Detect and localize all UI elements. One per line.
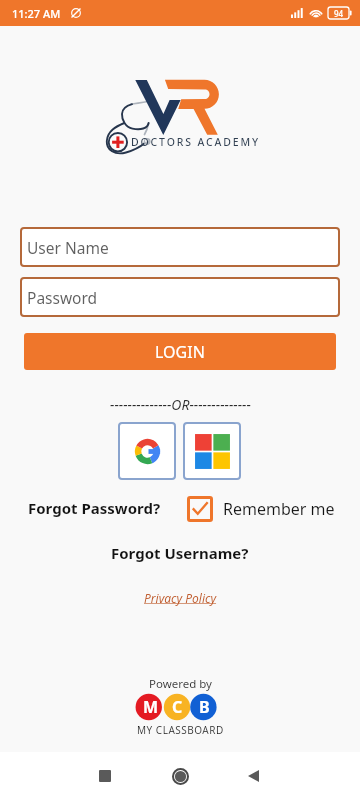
button[interactable]: Sign in with Google — [118, 422, 176, 480]
staticText: MY CLASSBOARD — [137, 723, 224, 737]
staticText: 94 — [334, 8, 344, 19]
staticText: Powered by — [149, 676, 212, 692]
staticText: C — [172, 696, 183, 718]
button[interactable]: Password — [20, 277, 340, 317]
button[interactable]: Forgot Password? — [28, 498, 161, 518]
staticText: Remember me — [223, 498, 335, 520]
button[interactable]: Sign in with Microsoft — [183, 422, 241, 480]
staticText: Password — [27, 287, 98, 308]
staticText: 11:27 AM — [12, 6, 61, 21]
button[interactable]: Privacy Policy — [144, 590, 217, 606]
button[interactable]: Home — [160, 756, 200, 796]
button[interactable]: Remember me — [187, 496, 335, 522]
staticText: Forgot Password? — [28, 498, 161, 518]
button[interactable]: Back — [233, 756, 273, 796]
button[interactable]: Forgot Username? — [111, 543, 249, 563]
staticText: LOGIN — [155, 341, 205, 363]
staticText: M — [143, 696, 155, 718]
button[interactable]: User Name — [20, 227, 340, 267]
button[interactable]: Recents — [85, 756, 125, 796]
staticText: --------------OR-------------- — [110, 395, 251, 414]
staticText: B — [199, 696, 210, 718]
button[interactable]: LOGIN — [24, 333, 336, 370]
staticText: DOCTORS ACADEMY — [131, 135, 260, 149]
staticText: User Name — [27, 237, 109, 258]
